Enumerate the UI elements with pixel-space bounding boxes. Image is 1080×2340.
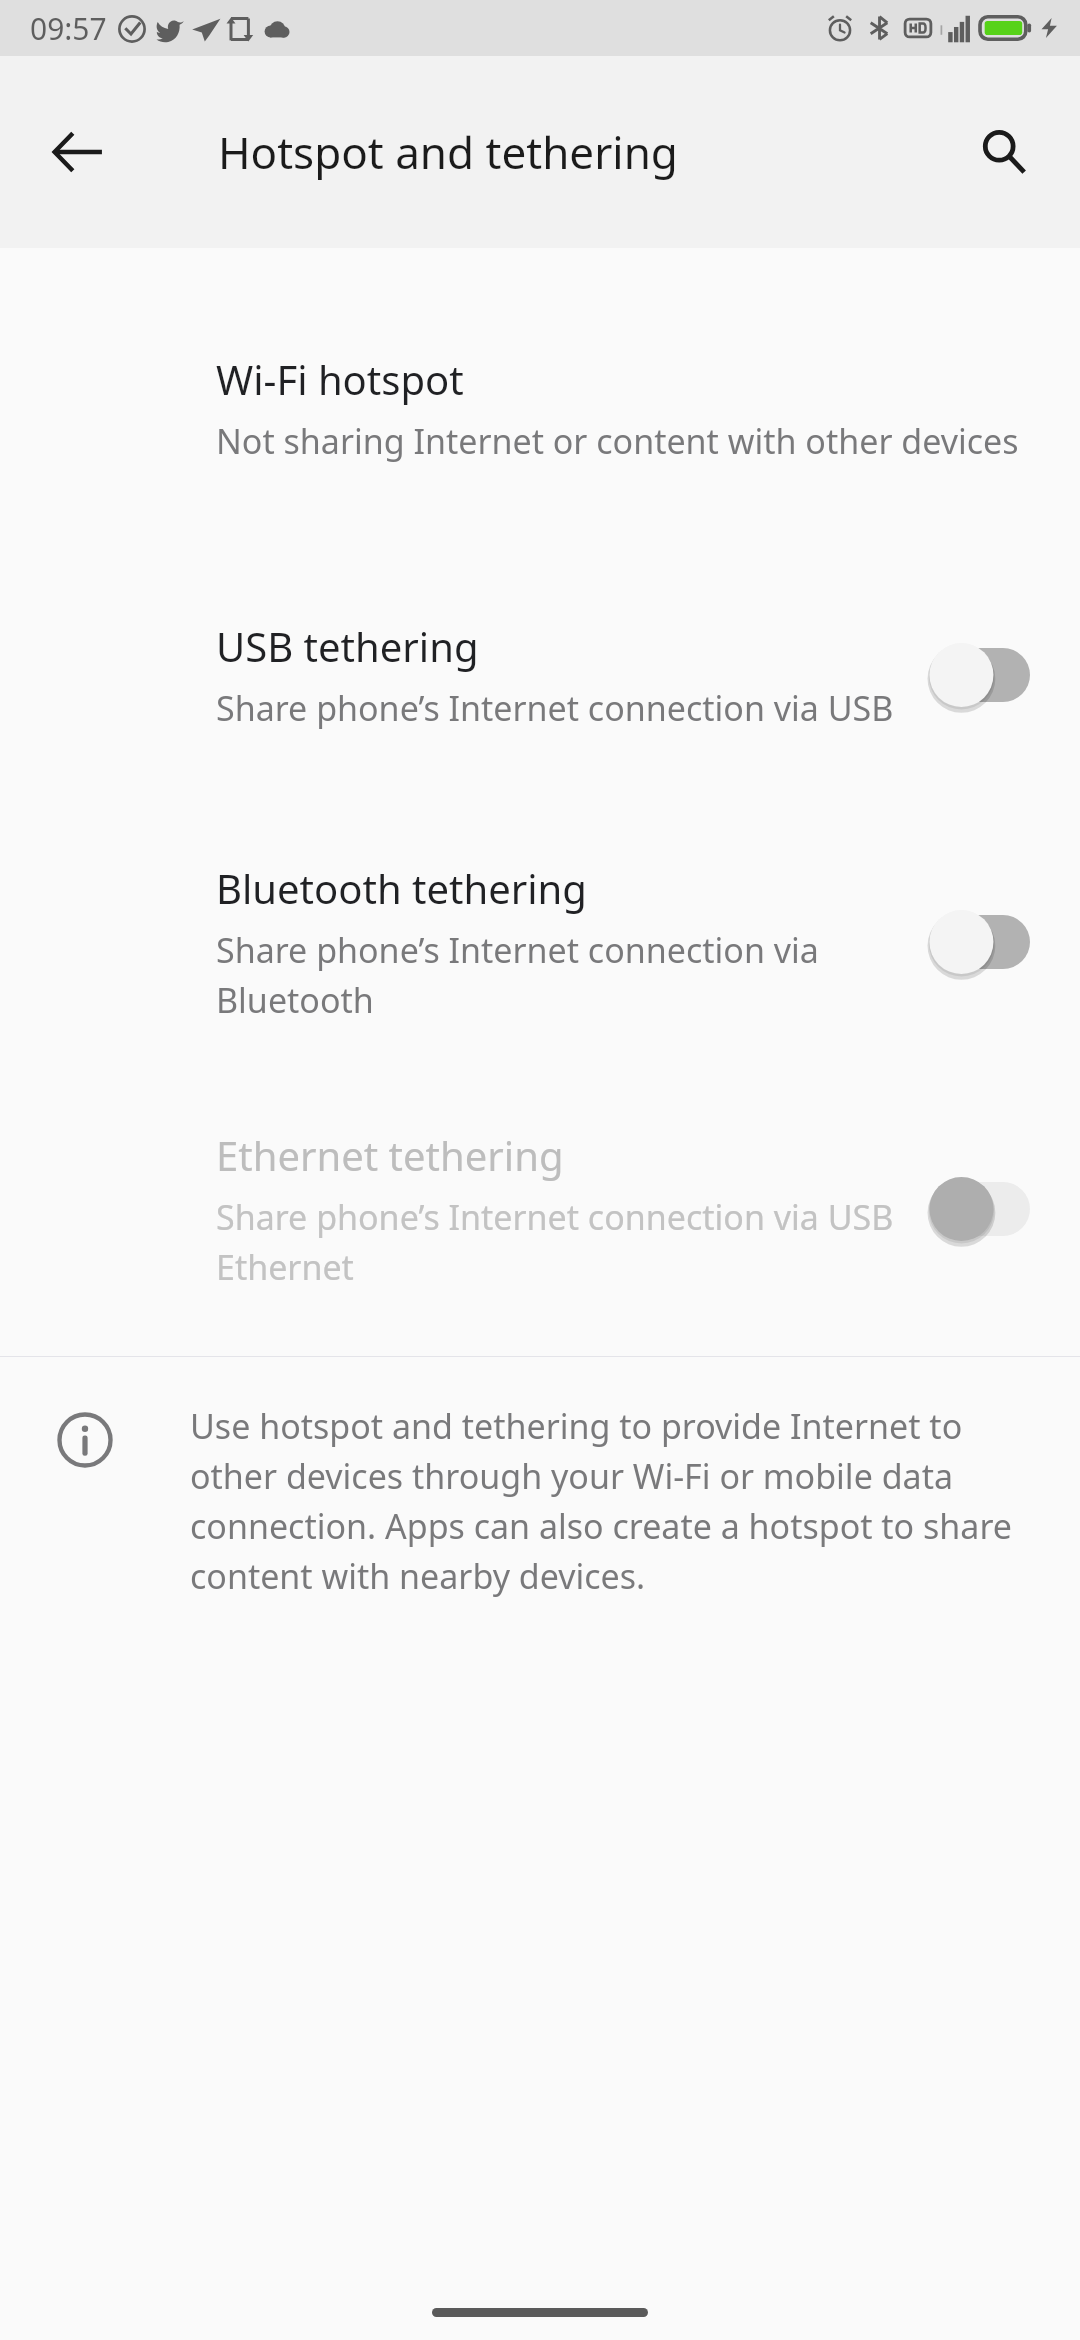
staticText: Bluetooth tethering (216, 861, 587, 915)
staticText: Share phone’s Internet connection via US… (216, 685, 894, 731)
button[interactable]: Back (30, 104, 126, 200)
button[interactable]: Ethernet tethering (0, 1075, 1080, 1342)
staticText: Share phone’s Internet connection via Bl… (216, 927, 902, 1023)
staticText: Wi-Fi hotspot (216, 352, 464, 406)
button[interactable]: Wi-Fi hotspot (0, 274, 1080, 541)
staticText: Ethernet tethering (216, 1128, 564, 1182)
staticText: Share phone’s Internet connection via US… (216, 1194, 902, 1290)
staticText: Hotspot and tethering (218, 122, 678, 182)
staticText: USB tethering (216, 619, 479, 673)
button[interactable]: Toggle (926, 631, 1038, 719)
button[interactable]: USB tethering (0, 541, 1080, 808)
button[interactable]: Search (956, 104, 1052, 200)
button[interactable]: Toggle (926, 1165, 1038, 1253)
staticText: Use hotspot and tethering to provide Int… (190, 1403, 1028, 1599)
button[interactable]: Toggle (926, 898, 1038, 986)
staticText: 09:57 (30, 8, 107, 49)
button[interactable]: Bluetooth tethering (0, 808, 1080, 1075)
staticText: Not sharing Internet or content with oth… (216, 418, 1019, 464)
